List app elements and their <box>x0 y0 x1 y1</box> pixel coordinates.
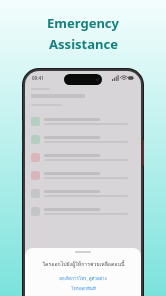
staticText: Assistance <box>49 35 118 53</box>
staticText: Emergency <box>47 14 119 32</box>
staticText: ยกเลิกการโทร ดูตัวอย่าง <box>59 275 107 282</box>
staticText: 09:41 <box>32 75 44 81</box>
staticText: โทรออกทันที <box>71 285 96 292</box>
button[interactable]: ยกเลิกการโทร ดูตัวอย่าง <box>53 274 113 283</box>
button[interactable]: โทรออกทันที <box>65 284 102 293</box>
staticText: ใครออกไปยังผู้ให้การช่วยเหลือตอนนี้ <box>42 260 125 268</box>
